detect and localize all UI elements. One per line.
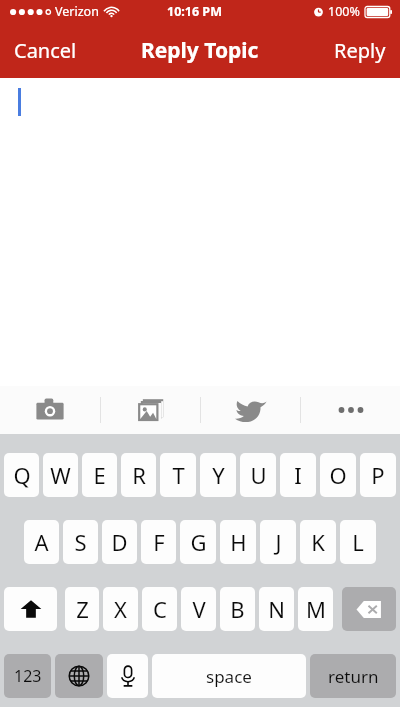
button[interactable]: C: [142, 587, 177, 631]
staticText: W: [50, 460, 71, 490]
button[interactable]: More options: [301, 386, 400, 434]
staticText: Cancel: [14, 37, 77, 64]
button[interactable]: R: [121, 453, 156, 497]
staticText: O: [329, 460, 347, 490]
staticText: Y: [212, 460, 225, 490]
button[interactable]: F: [141, 520, 176, 564]
button[interactable]: Q: [4, 453, 39, 497]
staticText: H: [230, 527, 247, 557]
staticText: K: [311, 527, 325, 557]
button[interactable]: Y: [200, 453, 236, 497]
button[interactable]: Take photo: [0, 386, 100, 434]
staticText: C: [153, 594, 167, 624]
button[interactable]: Dictate: [107, 654, 148, 698]
button[interactable]: Shift: [4, 587, 57, 631]
staticText: E: [93, 460, 106, 490]
button[interactable]: K: [300, 520, 336, 564]
staticText: X: [114, 594, 127, 624]
staticText: D: [111, 527, 128, 557]
staticText: L: [352, 527, 364, 557]
staticText: Verizon: [55, 3, 99, 20]
button[interactable]: Change keyboard: [55, 654, 103, 698]
staticText: Reply Topic: [141, 36, 259, 65]
button[interactable]: Backspace: [342, 587, 396, 631]
staticText: I: [294, 460, 302, 490]
staticText: Z: [76, 594, 89, 624]
button[interactable]: D: [102, 520, 137, 564]
staticText: F: [153, 527, 165, 557]
staticText: G: [190, 527, 207, 557]
staticText: N: [268, 594, 285, 624]
button[interactable]: A: [24, 520, 59, 564]
staticText: P: [371, 460, 385, 490]
button[interactable]: Photo library: [101, 386, 200, 434]
staticText: return: [328, 665, 379, 688]
button[interactable]: O: [320, 453, 356, 497]
button[interactable]: Share on Twitter: [201, 386, 300, 434]
button[interactable]: Reply: [320, 25, 400, 76]
button[interactable]: E: [82, 453, 117, 497]
button[interactable]: W: [43, 453, 78, 497]
button[interactable]: N: [259, 587, 294, 631]
button[interactable]: P: [360, 453, 396, 497]
button[interactable]: V: [181, 587, 216, 631]
staticText: V: [192, 594, 206, 624]
button[interactable]: I: [280, 453, 316, 497]
staticText: A: [34, 527, 49, 557]
staticText: J: [275, 527, 282, 557]
button[interactable]: Cancel: [0, 25, 91, 76]
button[interactable]: H: [220, 520, 256, 564]
button[interactable]: X: [103, 587, 138, 631]
button[interactable]: S: [63, 520, 98, 564]
staticText: R: [132, 460, 146, 490]
staticText: 10:16 PM: [167, 3, 222, 20]
staticText: Reply: [334, 37, 386, 64]
button[interactable]: L: [340, 520, 376, 564]
staticText: Q: [13, 460, 31, 490]
staticText: M: [306, 594, 326, 624]
button[interactable]: Z: [65, 587, 99, 631]
button[interactable]: G: [180, 520, 216, 564]
button[interactable]: B: [220, 587, 255, 631]
staticText: T: [172, 460, 185, 490]
button[interactable]: T: [160, 453, 196, 497]
button[interactable]: return: [310, 654, 396, 698]
staticText: 123: [14, 665, 42, 687]
button[interactable]: 123: [4, 654, 51, 698]
staticText: S: [74, 527, 87, 557]
staticText: 100%: [328, 3, 360, 20]
button[interactable]: J: [260, 520, 296, 564]
button[interactable]: M: [298, 587, 333, 631]
button[interactable]: U: [240, 453, 276, 497]
staticText: B: [230, 594, 245, 624]
staticText: U: [250, 460, 267, 490]
button[interactable]: space: [152, 654, 306, 698]
staticText: space: [206, 665, 252, 688]
